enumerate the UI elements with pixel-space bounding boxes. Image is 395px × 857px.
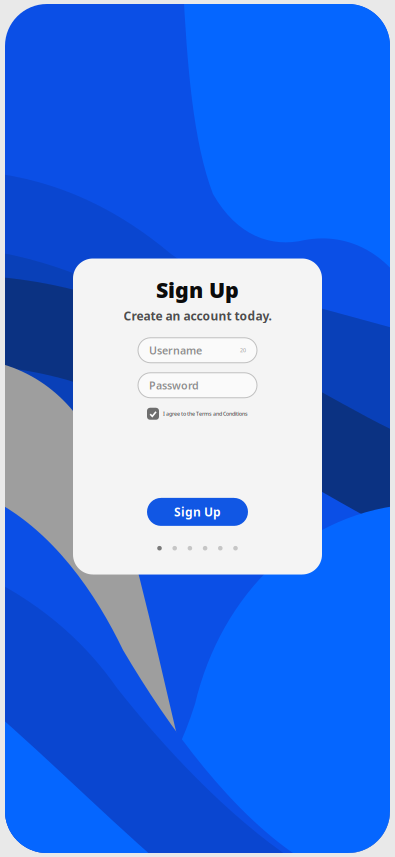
staticText: I agree to the Terms and Conditions xyxy=(163,410,248,417)
staticText: 20 xyxy=(240,347,246,354)
staticText: Sign Up xyxy=(156,275,239,304)
staticText: Sign Up xyxy=(174,504,221,520)
button[interactable]: I agree to the Terms and Conditions xyxy=(147,408,248,420)
staticText: Create an account today. xyxy=(123,308,271,324)
button[interactable]: Sign Up xyxy=(147,498,248,526)
staticText: Password xyxy=(149,378,199,392)
staticText: Username xyxy=(149,343,202,357)
